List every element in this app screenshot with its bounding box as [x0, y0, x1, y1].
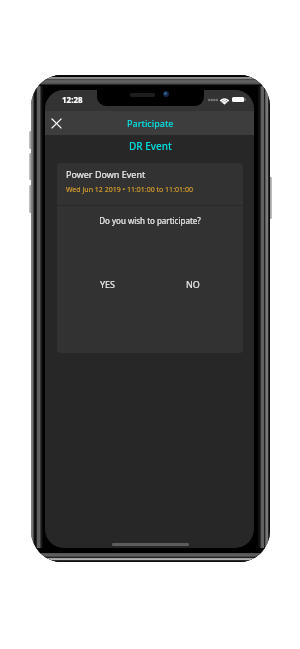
staticText: Do you wish to participate?	[57, 215, 243, 226]
button[interactable]: Close	[45, 112, 67, 134]
staticText: Participate	[127, 117, 174, 129]
staticText: Wed Jun 12 2019 • 11:01:00 to 11:01:00	[66, 185, 193, 195]
staticText: Power Down Event	[66, 168, 146, 180]
staticText: 12:28	[62, 94, 83, 105]
button[interactable]: NO	[172, 273, 214, 295]
staticText: NO	[186, 278, 200, 290]
staticText: DR Event	[129, 139, 172, 153]
button[interactable]: YES	[87, 273, 129, 295]
staticText: YES	[100, 278, 116, 290]
